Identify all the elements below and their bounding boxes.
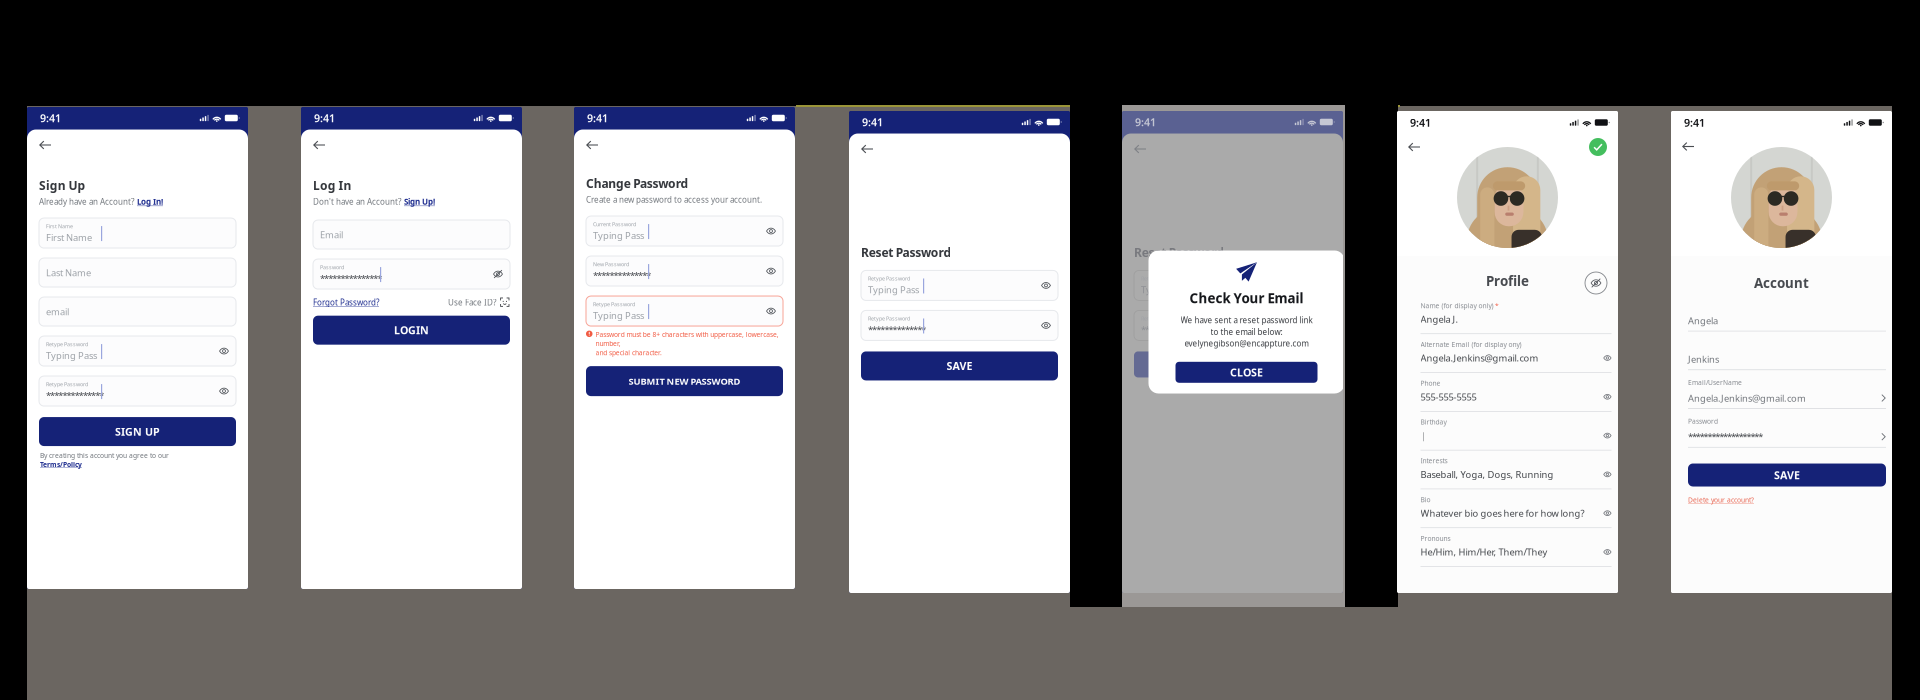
button[interactable]: email [39, 297, 236, 326]
button[interactable]: Terms/Policy [40, 460, 82, 469]
staticText: 555-555-5555 [1420, 391, 1476, 403]
button[interactable]: Pronouns [1420, 527, 1611, 566]
staticText: Password [1688, 417, 1718, 426]
staticText: Pronouns [1420, 534, 1450, 543]
staticText: SAVE [946, 359, 972, 373]
staticText: 9:41 [1410, 115, 1431, 130]
staticText: * [1495, 301, 1499, 310]
staticText: Change Password [586, 175, 688, 191]
button[interactable]: Back [856, 138, 879, 159]
staticText: Typing Pass [1141, 283, 1192, 296]
button[interactable]: Bio [1420, 489, 1611, 527]
button[interactable]: Phone [1420, 372, 1611, 411]
button[interactable]: Angela [1688, 293, 1886, 331]
staticText: evelynegibson@encappture.com [1184, 338, 1308, 349]
staticText: Reset Password [861, 244, 951, 260]
staticText: Password [320, 264, 344, 271]
button[interactable]: New Password [586, 256, 783, 286]
staticText: 9:41 [1135, 115, 1156, 129]
button[interactable]: Retype Password [861, 270, 1058, 300]
staticText: 9:41 [40, 111, 61, 125]
staticText: ************** [868, 323, 926, 336]
staticText: Don't have an Account? [313, 196, 401, 207]
button[interactable]: SAVE [861, 351, 1058, 380]
button[interactable]: Retype Password [39, 376, 236, 406]
button[interactable]: Last Name [39, 258, 236, 287]
button[interactable]: Email [313, 220, 510, 249]
staticText: email [46, 305, 69, 318]
staticText: Forgot Password? [313, 297, 379, 308]
button[interactable]: Sign Up! [404, 196, 435, 207]
staticText: Alternate Email (for display ony) [1420, 340, 1521, 349]
button[interactable]: Use Face ID? [448, 297, 510, 308]
button[interactable]: Retype Password [861, 310, 1058, 340]
button[interactable]: Back [1677, 136, 1700, 157]
button[interactable] [1134, 351, 1331, 377]
button[interactable]: Name (for display only) [1420, 295, 1611, 333]
staticText: Typing Pass [593, 309, 644, 322]
button[interactable]: Delete your account? [1688, 495, 1754, 504]
button[interactable]: SUBMIT NEW PASSWORD [586, 366, 783, 396]
staticText: Use Face ID? [448, 297, 496, 308]
button[interactable]: LOGIN [313, 316, 510, 345]
staticText: Create a new password to access your acc… [586, 194, 762, 205]
staticText: and special character. [595, 348, 662, 357]
staticText: Interests [1420, 456, 1447, 465]
staticText: Typing Pass [593, 229, 644, 242]
staticText: Typing Pass [868, 283, 919, 296]
staticText: Typing Pass [46, 349, 97, 362]
button[interactable]: Log In! [137, 196, 163, 207]
button[interactable]: Back [1403, 136, 1426, 157]
button[interactable]: Birthday [1420, 411, 1611, 450]
staticText: ************** [1141, 323, 1199, 336]
button[interactable]: SAVE [1688, 463, 1886, 486]
button[interactable]: Interests [1420, 450, 1611, 489]
button[interactable]: Email/UserName [1688, 370, 1886, 409]
staticText: LOGIN [394, 323, 429, 337]
staticText: Baseball, Yoga, Dogs, Running [1420, 468, 1553, 481]
button[interactable]: Jenkins [1688, 331, 1886, 370]
button[interactable]: Password [313, 259, 510, 289]
staticText: Retype Password [46, 341, 88, 348]
button[interactable]: First Name [39, 218, 236, 248]
staticText: ************** [46, 389, 104, 402]
button[interactable]: Retype Password [39, 336, 236, 366]
button[interactable]: Forgot Password? [313, 297, 379, 308]
staticText: SUBMIT NEW PASSWORD [628, 375, 740, 387]
button[interactable]: CLOSE [1175, 362, 1317, 383]
staticText: We have sent a reset password link [1180, 315, 1312, 325]
staticText: Email/UserName [1688, 378, 1742, 387]
staticText: Retype Password [46, 381, 88, 388]
staticText: 9:41 [314, 111, 335, 125]
staticText: First Name [46, 231, 92, 244]
button[interactable]: Back [308, 134, 331, 155]
button[interactable]: Back [581, 134, 604, 155]
button[interactable]: Back [1129, 138, 1152, 159]
staticText: ******************* [1688, 430, 1763, 443]
button[interactable]: Retype Password [1134, 310, 1331, 340]
staticText: New Password [593, 261, 629, 268]
button[interactable]: Current Password [586, 216, 783, 246]
staticText: Current Password [593, 221, 636, 228]
staticText: ************** [593, 269, 651, 282]
button[interactable]: Save profile [1587, 136, 1609, 158]
staticText: Account [1754, 274, 1809, 292]
button[interactable]: Hide details [1584, 271, 1608, 295]
staticText: Retype Password [868, 315, 910, 322]
button[interactable]: Retype Password [1134, 270, 1331, 300]
staticText: 9:41 [1684, 115, 1705, 130]
staticText: Angela [1688, 314, 1718, 327]
button[interactable]: SIGN UP [39, 417, 236, 446]
staticText: Reset Password [1134, 244, 1224, 260]
staticText: to the email below: [1210, 326, 1282, 337]
button[interactable]: Retype Password [586, 296, 783, 326]
staticText: Log In! [137, 196, 163, 207]
staticText: Profile [1486, 272, 1529, 290]
staticText: Log In [313, 177, 351, 193]
button[interactable]: Back [34, 134, 57, 155]
staticText: Name (for display only) [1420, 301, 1493, 310]
staticText: Sign Up [39, 177, 85, 193]
button[interactable]: Password [1688, 409, 1886, 447]
staticText: Angela.Jenkins@gmail.com [1688, 392, 1806, 404]
button[interactable]: Alternate Email (for display ony) [1420, 333, 1611, 372]
